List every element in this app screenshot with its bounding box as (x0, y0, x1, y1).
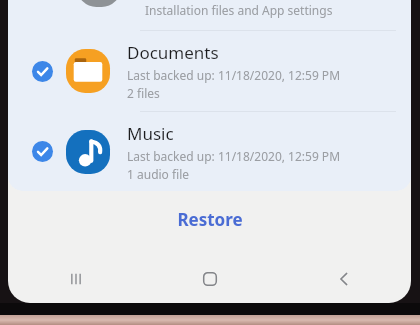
button[interactable]: Home (143, 255, 277, 303)
staticText: 1 audio file (127, 166, 190, 182)
button[interactable]: Restore (8, 191, 411, 248)
button[interactable]: Back (277, 255, 411, 303)
staticText: Music (127, 122, 174, 145)
button[interactable]: Selected (8, 112, 411, 191)
staticText: Restore (177, 208, 243, 231)
button[interactable]: Selected (32, 141, 53, 162)
staticText: 2 files (127, 85, 160, 101)
button[interactable]: Recent apps (8, 255, 143, 303)
button[interactable]: Selected (32, 61, 53, 82)
button[interactable]: Selected (8, 31, 411, 111)
staticText: Last backed up: 11/18/2020, 12:59 PM (127, 148, 341, 164)
staticText: Installation files and App settings (145, 2, 333, 18)
staticText: Documents (127, 41, 219, 64)
staticText: Last backed up: 11/18/2020, 12:59 PM (127, 67, 341, 83)
